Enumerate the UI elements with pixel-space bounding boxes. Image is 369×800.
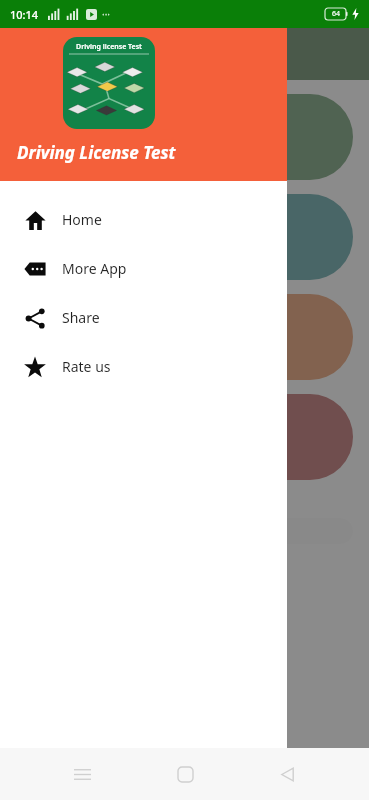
button[interactable]: Driving license Test <box>63 37 155 129</box>
button[interactable]: Home <box>165 754 205 794</box>
button[interactable]: More App <box>0 244 287 293</box>
button[interactable] <box>16 94 353 180</box>
staticText: 64 <box>332 9 341 19</box>
other: Home <box>25 210 46 231</box>
button[interactable] <box>16 194 353 280</box>
staticText: Share <box>62 308 100 327</box>
other: Rate us <box>24 356 46 378</box>
staticText: ··· <box>102 7 111 21</box>
other: More App <box>24 258 46 280</box>
staticText: Home <box>62 210 102 229</box>
button[interactable]: Rate us <box>0 342 287 391</box>
staticText: 10:14 <box>10 7 39 22</box>
other: Share <box>25 308 46 329</box>
staticText: Driving License Test <box>17 141 176 164</box>
staticText: More App <box>62 259 127 278</box>
staticText: Driving license Test <box>76 42 142 52</box>
button[interactable] <box>16 518 353 544</box>
button[interactable] <box>16 394 353 480</box>
staticText: Rate us <box>62 357 111 376</box>
button[interactable]: Back <box>267 754 307 794</box>
button[interactable] <box>16 294 353 380</box>
button[interactable]: Recents <box>62 754 102 794</box>
button[interactable]: Home <box>0 195 287 244</box>
button[interactable]: Share <box>0 293 287 342</box>
